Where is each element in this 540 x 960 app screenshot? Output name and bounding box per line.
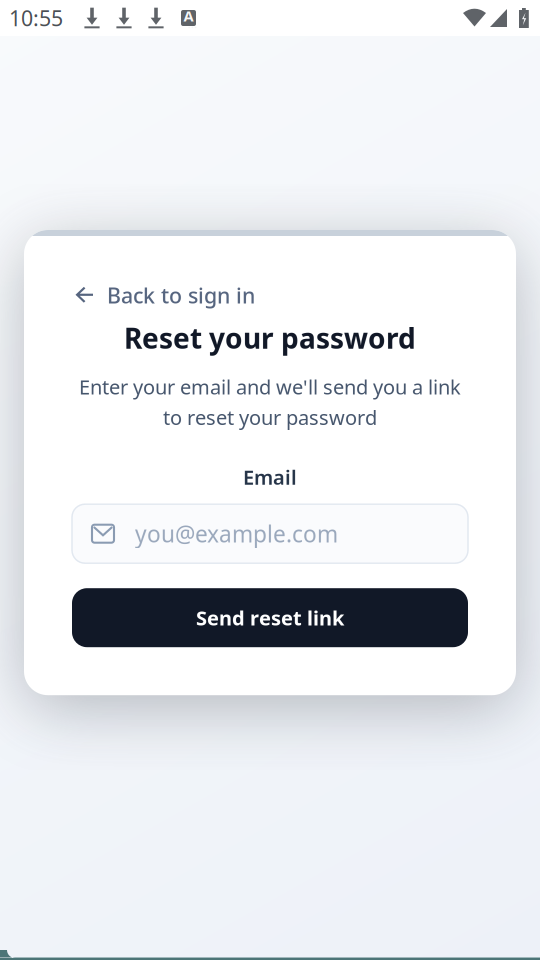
staticText: 10:55 xyxy=(9,4,63,32)
staticText: Back to sign in xyxy=(107,281,255,309)
staticText: Reset your password xyxy=(124,319,416,356)
staticText: to reset your password xyxy=(163,404,377,431)
staticText: A xyxy=(183,6,193,26)
staticText: you@example.com xyxy=(135,519,338,549)
staticText: Email xyxy=(243,464,297,490)
button[interactable]: Back to sign in xyxy=(24,230,516,319)
staticText: Enter your email and we'll send you a li… xyxy=(79,373,461,400)
staticText: Send reset link xyxy=(196,604,344,631)
button[interactable]: Send reset link xyxy=(24,588,516,647)
